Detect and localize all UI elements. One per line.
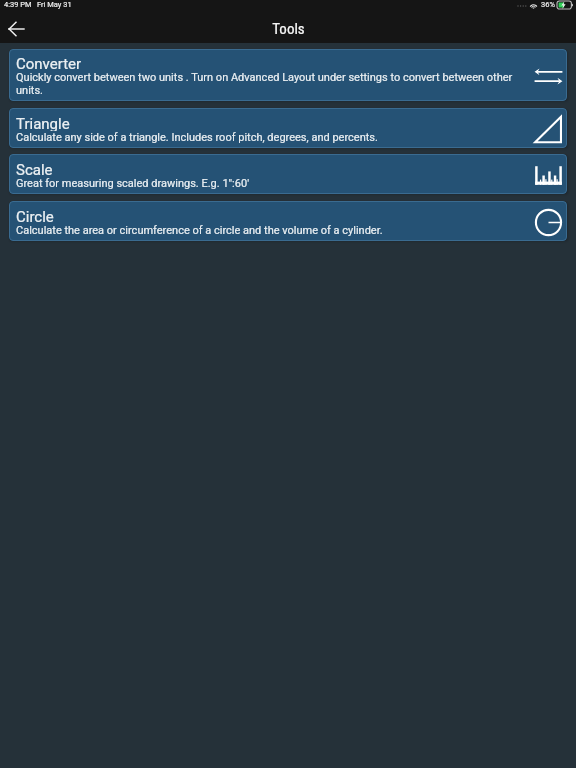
staticText: Tools [272, 20, 305, 38]
staticText: 4:39 PM [4, 0, 32, 9]
staticText: Quickly convert between two units . Turn… [16, 71, 527, 97]
staticText: Converter [16, 55, 82, 71]
staticText: Fri May 31 [37, 0, 72, 9]
staticText: Calculate the area or circumference of a… [16, 224, 383, 237]
button[interactable]: Triangle [9, 108, 567, 148]
staticText: Great for measuring scaled drawings. E.g… [16, 177, 250, 190]
button[interactable]: Converter [9, 49, 567, 101]
button[interactable]: Circle [9, 201, 567, 241]
staticText: Triangle [16, 115, 70, 131]
staticText: Circle [16, 208, 54, 224]
staticText: Calculate any side of a triangle. Includ… [16, 131, 378, 144]
button[interactable]: Back [5, 18, 27, 40]
button[interactable]: Scale [9, 154, 567, 194]
staticText: Scale [16, 161, 53, 177]
staticText: 36% [541, 0, 555, 9]
